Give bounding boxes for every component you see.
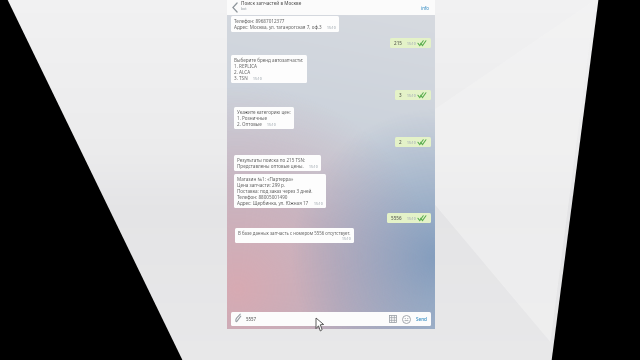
button[interactable]: Emoji (401, 314, 411, 324)
staticText: 15:10 (327, 25, 336, 30)
staticText: 2 (399, 139, 402, 145)
staticText: Адрес: Щербинка, ул. Южная 17 (237, 200, 309, 206)
staticText: 15:10 (407, 216, 416, 221)
button[interactable]: 215 (390, 38, 431, 48)
staticText: 15:10 (407, 140, 416, 145)
staticText: Поставка: под заказ через 3 дней. (237, 188, 313, 194)
staticText: Выберите бренд автозапчасти: (234, 57, 304, 63)
staticText: 3. TSN (234, 75, 248, 81)
staticText: Цена запчасти: 299 р. (237, 182, 286, 188)
staticText: 15:10 (253, 76, 262, 81)
staticText: 15:10 (314, 201, 323, 206)
button[interactable]: 3 (395, 90, 431, 100)
staticText: 15:10 (407, 41, 416, 46)
button[interactable]: Выберите бренд автозапчасти: (231, 55, 307, 83)
staticText: Укажите категорию цен: (237, 109, 291, 115)
staticText: 2. Оптовые (237, 121, 262, 127)
staticText: 5557 (246, 316, 257, 322)
staticText: Телефон: 88005001490 (237, 194, 288, 200)
staticText: 1. REPLICA (234, 63, 258, 69)
staticText: Результаты поиска по 215 TSN: (237, 157, 306, 163)
staticText: В базе данных запчасть с номером 5556 от… (238, 230, 351, 236)
staticText: info (421, 5, 430, 11)
staticText: 5556 (391, 215, 402, 221)
button[interactable]: Back (230, 3, 239, 12)
button[interactable]: Укажите категорию цен: (234, 107, 294, 129)
button[interactable]: 2 (395, 137, 431, 147)
staticText: 15:10 (342, 236, 351, 241)
staticText: Телефон: 89687012377 (234, 18, 285, 24)
staticText: 1. Розничные (237, 115, 267, 121)
staticText: 15:10 (309, 164, 318, 169)
staticText: Адрес: Москва, ул. таганрогская 7, оф.3 (234, 24, 322, 30)
button[interactable]: Keyboard (388, 314, 398, 324)
button[interactable]: В базе данных запчасть с номером 5556 от… (235, 228, 354, 243)
button[interactable]: Attach (234, 314, 244, 324)
staticText: Поиск запчастей в Москве (241, 0, 302, 6)
staticText: 215 (394, 40, 402, 46)
staticText: Send (416, 316, 427, 322)
staticText: 2. ALCA (234, 69, 251, 75)
button[interactable]: 5556 (387, 213, 431, 223)
button[interactable]: Результаты поиска по 215 TSN: (234, 155, 321, 171)
staticText: Представлены оптовые цены. (237, 163, 304, 169)
staticText: Магазин №1: «Партерра» (237, 176, 294, 182)
staticText: 3 (399, 92, 402, 98)
staticText: bot (241, 6, 247, 11)
button[interactable]: Send (415, 316, 428, 322)
button[interactable]: Магазин №1: «Партерра» (234, 174, 326, 208)
button[interactable]: Телефон: 89687012377 (231, 16, 339, 32)
staticText: 15:10 (267, 122, 276, 127)
button[interactable]: info (419, 4, 432, 12)
staticText: 15:10 (407, 93, 416, 98)
